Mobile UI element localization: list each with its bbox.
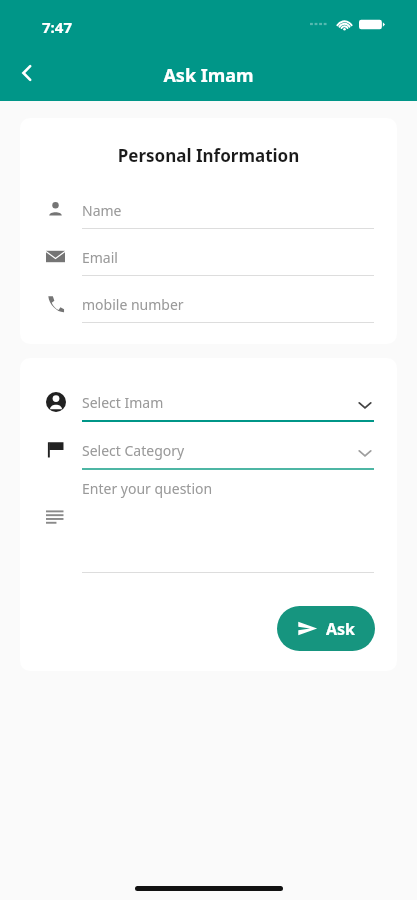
staticText: 7:47: [42, 17, 72, 37]
button[interactable]: Select Imam: [20, 383, 397, 423]
staticText: Ask: [326, 618, 356, 640]
staticText: Select Imam: [82, 393, 164, 412]
staticText: Name: [82, 201, 122, 220]
button[interactable]: Name: [20, 191, 397, 231]
button[interactable]: Email: [20, 238, 397, 278]
staticText: mobile number: [82, 295, 184, 314]
staticText: Personal Information: [20, 144, 397, 167]
staticText: Enter your question: [82, 479, 213, 498]
button[interactable]: Back: [6, 52, 48, 94]
staticText: Select Category: [82, 441, 185, 460]
button[interactable]: Ask: [277, 606, 375, 651]
button[interactable]: Select Category: [20, 431, 397, 471]
button[interactable]: mobile number: [20, 285, 397, 325]
staticText: Email: [82, 248, 118, 267]
staticText: Ask Imam: [0, 63, 417, 88]
